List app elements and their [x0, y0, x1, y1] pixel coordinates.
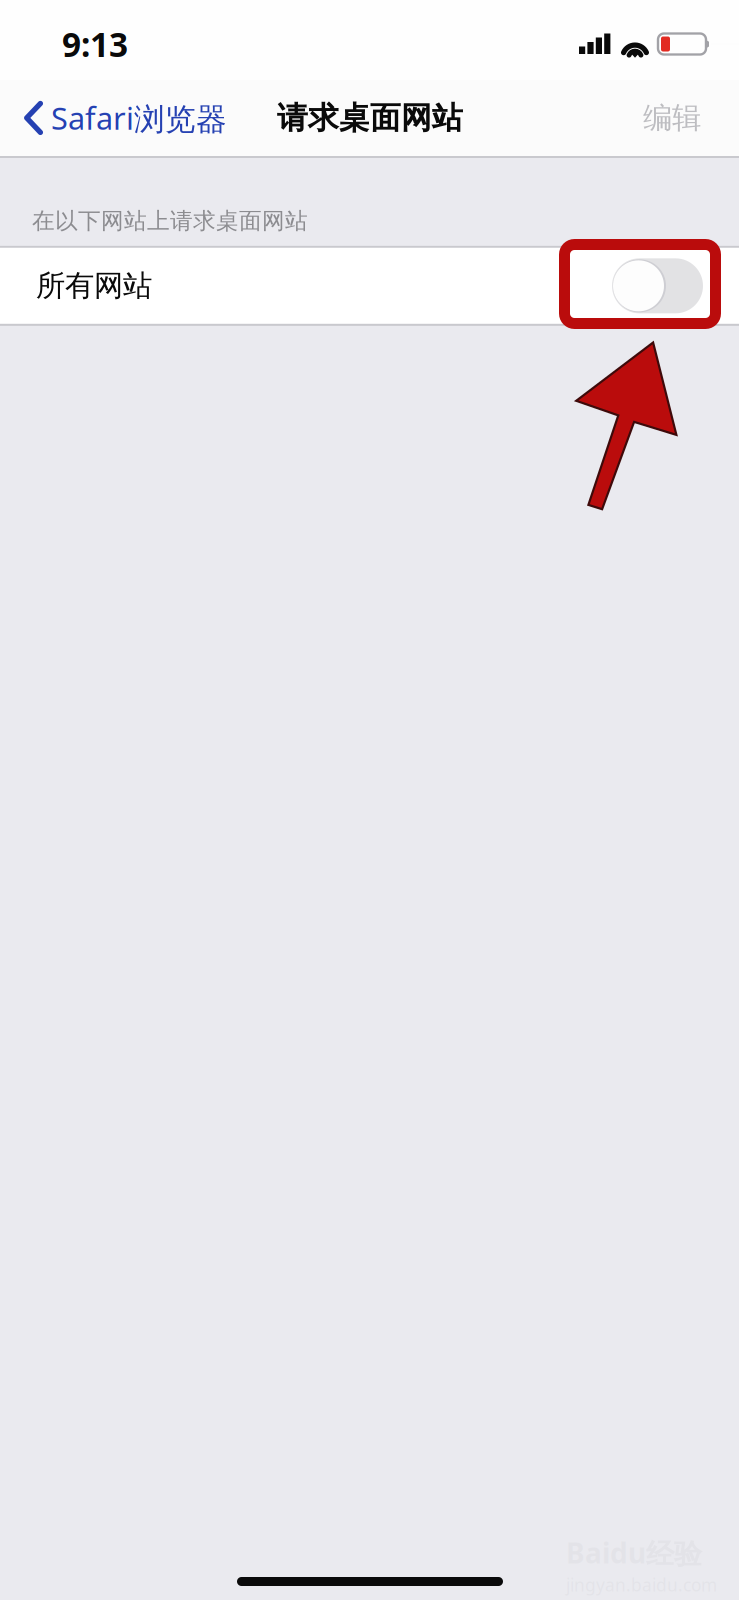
staticText: 请求桌面网站: [277, 99, 463, 137]
staticText: 在以下网站上请求桌面网站: [32, 207, 308, 235]
staticText: Safari浏览器: [51, 98, 227, 138]
staticText: 所有网站: [36, 268, 152, 304]
button[interactable]: 返回 Safari浏览器: [0, 80, 239, 156]
button[interactable]: 所有网站: [0, 248, 739, 324]
staticText: 编辑: [643, 100, 701, 136]
button[interactable]: 编辑: [625, 80, 719, 156]
staticText: 9:13: [62, 22, 128, 66]
